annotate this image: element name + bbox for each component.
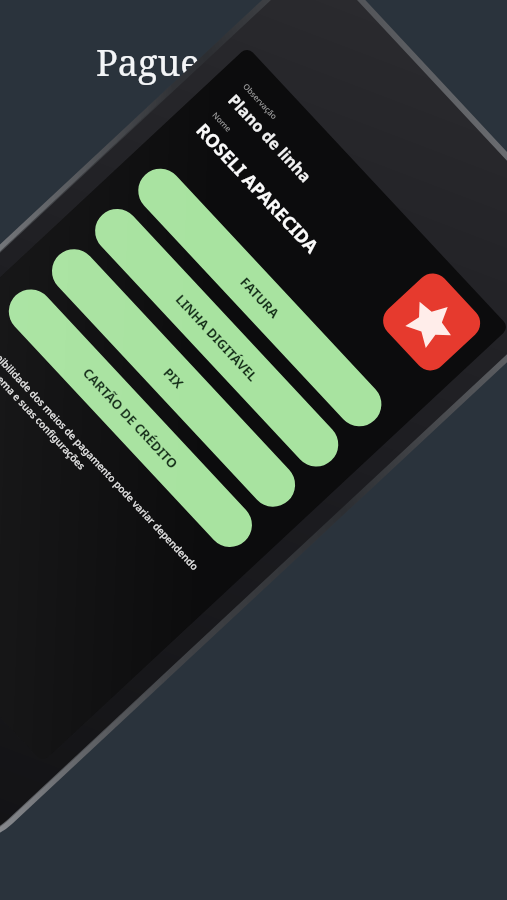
button[interactable]: Pague sua fatura xyxy=(0,0,507,900)
